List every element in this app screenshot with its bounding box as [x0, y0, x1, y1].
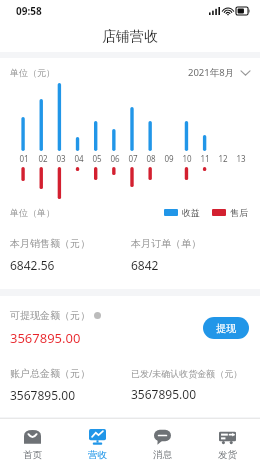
- staticText: 05: [92, 153, 102, 164]
- staticText: 单位（元）: [10, 67, 55, 78]
- staticText: 3567895.00: [10, 329, 81, 347]
- button[interactable]: 营收: [65, 419, 130, 469]
- button[interactable]: 首页: [0, 419, 65, 469]
- staticText: 本月销售额（元）: [10, 237, 90, 250]
- staticText: 03: [56, 153, 66, 164]
- staticText: 店铺营收: [102, 28, 158, 46]
- staticText: 02: [38, 153, 48, 164]
- button[interactable]: 2021年8月: [188, 66, 250, 79]
- staticText: 04: [74, 153, 84, 164]
- staticText: 已发/未确认收货金额（元）: [131, 367, 243, 379]
- staticText: 09:58: [16, 4, 42, 18]
- staticText: 10: [182, 153, 192, 164]
- staticText: 01: [19, 153, 29, 164]
- button[interactable]: 发货: [195, 419, 260, 469]
- staticText: 6842: [131, 257, 159, 273]
- staticText: 3567895.00: [10, 387, 75, 403]
- staticText: 2021年8月: [188, 66, 235, 79]
- staticText: 11: [200, 153, 210, 164]
- staticText: 收益: [182, 207, 200, 218]
- staticText: 账户总金额（元）: [10, 367, 90, 380]
- staticText: 提现: [216, 322, 236, 335]
- staticText: 13: [236, 153, 246, 164]
- staticText: 08: [146, 153, 156, 164]
- staticText: 3567895.00: [131, 386, 196, 402]
- button[interactable]: 提现: [203, 317, 249, 339]
- button[interactable]: 消息: [130, 419, 195, 469]
- staticText: 6842.56: [10, 257, 55, 273]
- staticText: 可提现金额（元）: [10, 309, 90, 322]
- button[interactable]: 说明: [94, 312, 101, 319]
- staticText: 单位（单）: [10, 207, 55, 218]
- staticText: 09: [164, 153, 174, 164]
- staticText: 售后: [230, 207, 248, 218]
- staticText: 本月订单（单）: [131, 237, 201, 250]
- staticText: 07: [128, 153, 138, 164]
- staticText: 12: [218, 153, 228, 164]
- staticText: 消息: [153, 449, 172, 461]
- staticText: 06: [110, 153, 120, 164]
- staticText: 营收: [88, 449, 107, 461]
- staticText: 首页: [23, 449, 42, 461]
- staticText: 发货: [218, 449, 237, 461]
